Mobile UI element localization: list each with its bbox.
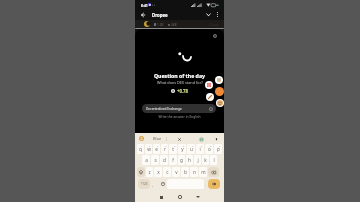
staticText: 8 bbox=[201, 144, 203, 147]
button[interactable]: i bbox=[196, 144, 204, 154]
button[interactable]: n bbox=[190, 167, 198, 177]
button[interactable]: l bbox=[210, 155, 217, 165]
staticText: +0.78 bbox=[177, 88, 189, 94]
button[interactable]: Recents bbox=[157, 193, 165, 201]
button[interactable]: Edit bbox=[206, 93, 214, 101]
button[interactable]: Period bbox=[204, 179, 208, 189]
staticText: Write the answer in English bbox=[135, 114, 224, 118]
staticText: What does DEX stand for? bbox=[157, 80, 203, 85]
button[interactable]: Symbols bbox=[138, 179, 150, 189]
staticText: p bbox=[217, 146, 220, 152]
staticText: 3 bbox=[157, 144, 159, 147]
staticText: e bbox=[155, 146, 158, 152]
staticText: f bbox=[172, 157, 174, 163]
staticText: 0 bbox=[219, 144, 221, 147]
staticText: u bbox=[190, 146, 193, 152]
button[interactable]: b bbox=[181, 167, 189, 177]
staticText: 9 bbox=[210, 144, 212, 147]
button[interactable]: Home bbox=[176, 193, 184, 201]
button[interactable]: h bbox=[186, 155, 193, 165]
button[interactable]: Back bbox=[138, 10, 147, 19]
staticText: l bbox=[213, 157, 215, 163]
staticText: Dropee bbox=[152, 12, 168, 18]
staticText: . bbox=[205, 182, 207, 187]
button[interactable]: Enter bbox=[208, 179, 220, 189]
staticText: k bbox=[204, 157, 207, 163]
button[interactable]: y bbox=[178, 144, 186, 154]
staticText: j bbox=[197, 157, 199, 163]
button[interactable]: q bbox=[137, 144, 144, 154]
staticText: t bbox=[172, 146, 174, 152]
staticText: w bbox=[147, 146, 151, 152]
button[interactable]: Emoji bbox=[216, 99, 224, 107]
button[interactable]: p bbox=[214, 144, 222, 154]
button[interactable]: j bbox=[194, 155, 201, 165]
button[interactable]: Share bbox=[205, 81, 213, 89]
staticText: z bbox=[148, 169, 151, 175]
button[interactable]: Back bbox=[194, 193, 202, 201]
button[interactable]: Backspace bbox=[208, 167, 219, 177]
staticText: 8:41 bbox=[141, 3, 148, 8]
button[interactable]: g bbox=[178, 155, 185, 165]
staticText: g bbox=[180, 157, 183, 163]
button[interactable]: e bbox=[153, 144, 160, 154]
staticText: 1.2K bbox=[157, 23, 164, 27]
button[interactable]: c bbox=[163, 167, 171, 177]
staticText: 5 bbox=[174, 144, 176, 147]
button[interactable]: Emoji bbox=[159, 179, 166, 189]
staticText: 4 bbox=[165, 144, 167, 147]
button[interactable]: u bbox=[187, 144, 195, 154]
button[interactable]: k bbox=[202, 155, 209, 165]
button[interactable]: z bbox=[146, 167, 153, 177]
button[interactable]: m bbox=[199, 167, 207, 177]
button[interactable]: x bbox=[154, 167, 162, 177]
staticText: o bbox=[208, 146, 211, 152]
staticText: y bbox=[181, 146, 184, 152]
staticText: s bbox=[154, 157, 157, 163]
button[interactable]: More options bbox=[213, 10, 222, 19]
staticText: v bbox=[175, 169, 178, 175]
button[interactable]: Close bbox=[211, 32, 219, 40]
button[interactable]: Voice input bbox=[212, 135, 220, 143]
staticText: 2h ago bbox=[209, 23, 219, 27]
staticText: Question of the day bbox=[154, 72, 205, 79]
staticText: 2 bbox=[149, 144, 151, 147]
button[interactable]: Blue bbox=[153, 136, 162, 141]
staticText: x bbox=[157, 169, 160, 175]
button[interactable]: Shift bbox=[137, 167, 145, 177]
staticText: ?123 bbox=[141, 182, 148, 186]
button[interactable]: Decentralized Exchange bbox=[142, 104, 216, 113]
button[interactable]: Dismiss bbox=[175, 135, 183, 143]
button[interactable]: Pause bbox=[215, 76, 223, 84]
staticText: q bbox=[139, 146, 142, 152]
staticText: 7 bbox=[192, 144, 194, 147]
staticText: i bbox=[199, 146, 201, 152]
staticText: 1 bbox=[141, 144, 143, 147]
staticText: 348 bbox=[171, 23, 177, 27]
button[interactable]: Translate bbox=[197, 135, 205, 143]
button[interactable]: d bbox=[160, 155, 168, 165]
button[interactable]: t bbox=[169, 144, 177, 154]
button[interactable]: a bbox=[142, 155, 150, 165]
button[interactable]: Comma bbox=[150, 179, 156, 189]
button[interactable]: w bbox=[145, 144, 152, 154]
button[interactable]: Google assistant bbox=[139, 136, 144, 141]
staticText: h bbox=[188, 157, 191, 163]
button[interactable]: f bbox=[169, 155, 177, 165]
staticText: n bbox=[193, 169, 196, 175]
button[interactable]: v bbox=[172, 167, 180, 177]
staticText: b bbox=[184, 169, 187, 175]
button[interactable]: s bbox=[151, 155, 159, 165]
staticText: Decentralized Exchange bbox=[146, 107, 182, 111]
button[interactable]: Record bbox=[215, 87, 224, 96]
staticText: m bbox=[201, 169, 206, 175]
button[interactable]: Expand bbox=[204, 10, 213, 19]
staticText: , bbox=[152, 182, 154, 187]
staticText: d bbox=[163, 157, 166, 163]
button[interactable]: o bbox=[205, 144, 213, 154]
staticText: r bbox=[164, 146, 166, 152]
staticText: c bbox=[166, 169, 169, 175]
button[interactable]: r bbox=[161, 144, 168, 154]
staticText: Blue bbox=[153, 136, 162, 141]
